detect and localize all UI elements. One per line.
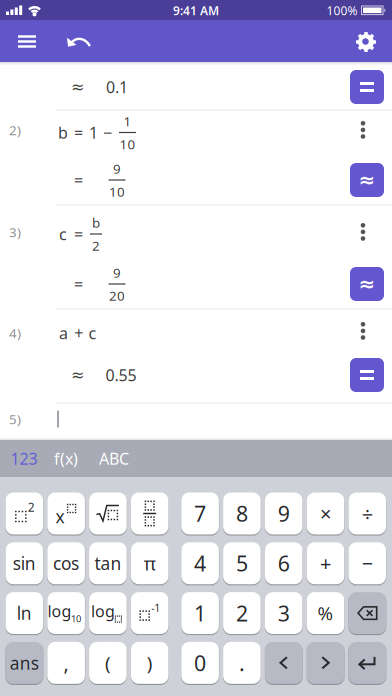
button[interactable]: . bbox=[223, 642, 261, 684]
staticText: 100% bbox=[326, 2, 357, 18]
staticText: 4) bbox=[9, 324, 21, 342]
button[interactable]: Settings bbox=[343, 20, 387, 62]
button[interactable]: Delete bbox=[348, 592, 386, 634]
staticText: + bbox=[320, 550, 331, 577]
staticText: 7 bbox=[194, 499, 206, 528]
button[interactable]: 7 bbox=[181, 492, 219, 534]
staticText: ans bbox=[10, 651, 39, 674]
staticText: 10 bbox=[119, 135, 135, 153]
button[interactable]: Exact value bbox=[350, 70, 384, 104]
staticText: 9 bbox=[278, 499, 290, 528]
staticText: c bbox=[59, 223, 67, 245]
button[interactable]: ÷ bbox=[348, 492, 386, 534]
staticText: f(x) bbox=[54, 448, 78, 469]
staticText: 1 bbox=[89, 122, 98, 143]
staticText: = bbox=[74, 223, 83, 245]
button[interactable]: 5 bbox=[223, 542, 261, 584]
button[interactable]: Move left bbox=[265, 642, 302, 684]
staticText: . bbox=[239, 649, 245, 677]
button[interactable]: 6 bbox=[265, 542, 302, 584]
button[interactable]: sin bbox=[5, 542, 43, 584]
staticText: 9 bbox=[113, 264, 121, 281]
button[interactable]: − bbox=[348, 542, 386, 584]
button[interactable]: tan bbox=[89, 542, 127, 584]
staticText: ( bbox=[105, 650, 111, 675]
button[interactable]: power bbox=[47, 492, 85, 534]
button[interactable]: 3 bbox=[265, 592, 302, 634]
staticText: π bbox=[144, 551, 156, 576]
button[interactable]: Row options bbox=[348, 115, 378, 145]
staticText: -1 bbox=[151, 600, 160, 615]
staticText: 9:41 AM bbox=[173, 2, 219, 18]
staticText: b bbox=[58, 122, 68, 143]
staticText: 0.55 bbox=[105, 364, 136, 386]
button[interactable]: f(x) bbox=[46, 440, 86, 476]
button[interactable]: π bbox=[131, 542, 168, 584]
button[interactable]: squared bbox=[5, 492, 43, 534]
staticText: ln bbox=[17, 602, 32, 625]
staticText: , bbox=[64, 650, 69, 676]
staticText: ÷ bbox=[362, 500, 373, 527]
staticText: ≈ bbox=[71, 78, 84, 96]
button[interactable]: 9 bbox=[265, 492, 302, 534]
button[interactable]: ans bbox=[5, 642, 43, 684]
button[interactable]: ( bbox=[89, 642, 127, 684]
button[interactable]: 8 bbox=[223, 492, 261, 534]
staticText: 2 bbox=[28, 499, 35, 515]
staticText: x bbox=[56, 505, 65, 528]
staticText: tan bbox=[94, 552, 121, 575]
button[interactable]: Undo bbox=[58, 20, 102, 62]
staticText: 6 bbox=[278, 549, 290, 577]
button[interactable]: Move right bbox=[307, 642, 344, 684]
button[interactable]: Exact value bbox=[350, 358, 384, 392]
button[interactable]: × bbox=[307, 492, 344, 534]
staticText: = bbox=[74, 122, 83, 143]
staticText: 20 bbox=[109, 287, 125, 304]
button[interactable]: % bbox=[307, 592, 344, 634]
button[interactable]: 4 bbox=[181, 542, 219, 584]
button[interactable]: ABC bbox=[91, 440, 137, 476]
staticText: 9 bbox=[113, 160, 121, 177]
button[interactable]: inverse bbox=[131, 592, 168, 634]
staticText: 5 bbox=[236, 549, 248, 577]
staticText: + bbox=[74, 322, 83, 344]
button[interactable]: + bbox=[307, 542, 344, 584]
button[interactable]: Row options bbox=[348, 217, 378, 247]
staticText: 3 bbox=[278, 599, 290, 627]
staticText: sin bbox=[13, 552, 36, 575]
button[interactable]: 123 bbox=[4, 440, 44, 476]
staticText: b bbox=[92, 214, 100, 231]
staticText: 3) bbox=[9, 223, 21, 241]
staticText: c bbox=[89, 322, 97, 344]
button[interactable]: 2 bbox=[223, 592, 261, 634]
button[interactable]: 1 bbox=[181, 592, 219, 634]
button[interactable]: fraction bbox=[131, 492, 168, 534]
button[interactable]: Row options bbox=[348, 316, 378, 346]
staticText: = bbox=[74, 273, 83, 295]
staticText: 8 bbox=[236, 499, 248, 528]
staticText: a bbox=[59, 322, 68, 344]
staticText: × bbox=[320, 500, 331, 527]
button[interactable]: log base n bbox=[89, 592, 127, 634]
staticText: 5) bbox=[9, 410, 21, 428]
button[interactable]: log base 10 bbox=[47, 592, 85, 634]
staticText: 4 bbox=[194, 549, 206, 577]
button[interactable]: Menu bbox=[7, 20, 47, 62]
staticText: 2 bbox=[236, 599, 248, 627]
staticText: ABC bbox=[99, 448, 129, 469]
staticText: 10 bbox=[71, 612, 81, 625]
staticText: = bbox=[74, 169, 83, 191]
button[interactable]: cos bbox=[47, 542, 85, 584]
button[interactable]: 0 bbox=[181, 642, 219, 684]
button[interactable]: Approximate value bbox=[350, 163, 384, 197]
staticText: ≈ bbox=[358, 273, 375, 295]
button[interactable]: square root bbox=[89, 492, 127, 534]
button[interactable]: ) bbox=[131, 642, 168, 684]
button[interactable]: Enter bbox=[348, 642, 386, 684]
button[interactable]: , bbox=[47, 642, 85, 684]
staticText: ≈ bbox=[71, 366, 84, 384]
staticText: log bbox=[48, 600, 72, 622]
button[interactable]: Approximate value bbox=[350, 267, 384, 301]
button[interactable]: ln bbox=[5, 592, 43, 634]
staticText: % bbox=[317, 601, 333, 625]
